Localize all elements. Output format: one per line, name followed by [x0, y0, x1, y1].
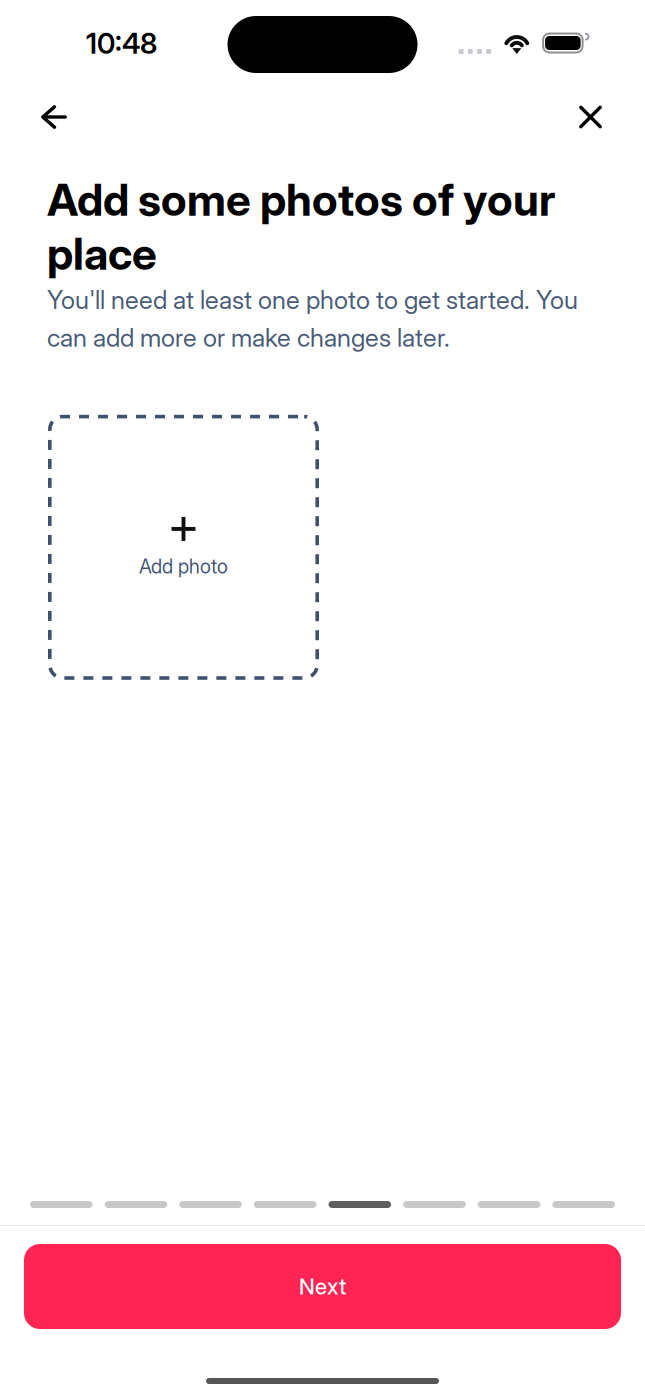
staticText: Add some photos of your place	[47, 173, 555, 280]
staticText: You'll need at least one photo to get st…	[47, 284, 578, 353]
button[interactable]: Next	[24, 1244, 621, 1329]
button[interactable]: Back	[0, 91, 87, 143]
staticText: 10:48	[86, 26, 157, 61]
staticText: Next	[299, 1273, 346, 1300]
button[interactable]: Close	[559, 91, 645, 142]
button[interactable]: Add photo	[48, 415, 319, 680]
staticText: Add photo	[139, 554, 228, 578]
